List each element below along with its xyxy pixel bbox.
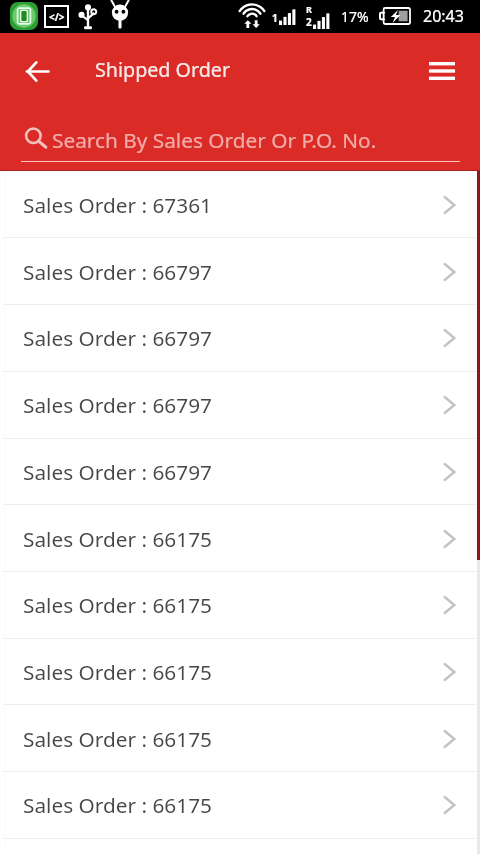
staticText: 20:43 (423, 5, 464, 27)
staticText: Sales Order : 66175 (23, 725, 212, 753)
button[interactable]: Sales Order : 67361 (0, 171, 480, 238)
staticText: Search By Sales Order Or P.O. No. (52, 126, 377, 154)
button[interactable]: Sales Order : 66797 (0, 371, 480, 438)
staticText: Sales Order : 66797 (23, 324, 212, 352)
staticText: 2 (306, 15, 312, 29)
button[interactable]: Sales Order : 66175 (0, 571, 480, 638)
staticText: Sales Order : 66175 (23, 791, 212, 819)
button[interactable]: Menu (418, 47, 466, 95)
button[interactable]: Sales Order : 66175 (0, 505, 480, 572)
button[interactable]: Sales Order : 66175 (0, 705, 480, 772)
staticText: 17% (341, 7, 369, 26)
staticText: Sales Order : 66175 (23, 591, 212, 619)
staticText: R (306, 3, 312, 15)
button[interactable]: Sales Order : 66797 (0, 438, 480, 505)
staticText: Sales Order : 66175 (23, 658, 212, 686)
button[interactable]: Back (13, 47, 61, 95)
button[interactable]: Sales Order : 66175 (0, 771, 480, 838)
staticText: Sales Order : 66797 (23, 458, 212, 486)
staticText: Sales Order : 67361 (23, 191, 212, 219)
button[interactable]: Sales Order : 66175 (0, 638, 480, 705)
button[interactable]: Sales Order : 66797 (0, 238, 480, 305)
staticText: Sales Order : 66797 (23, 258, 212, 286)
staticText: Sales Order : 66175 (23, 525, 212, 553)
button[interactable]: Sales Order : 66797 (0, 304, 480, 371)
staticText: Sales Order : 66797 (23, 391, 212, 419)
staticText: Shipped Order (95, 56, 231, 83)
button[interactable]: Search By Sales Order Or P.O. No. (21, 123, 460, 163)
staticText: 1 (272, 11, 278, 25)
staticText: </> (49, 10, 65, 24)
